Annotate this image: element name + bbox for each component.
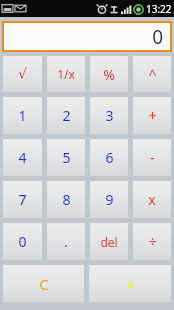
staticText: 1/x: [57, 66, 75, 82]
button[interactable]: 1/x: [46, 55, 86, 93]
staticText: 4: [18, 148, 27, 167]
button[interactable]: 5: [46, 138, 86, 177]
button[interactable]: del: [89, 222, 129, 261]
button[interactable]: 8: [46, 180, 86, 219]
staticText: x: [148, 190, 156, 209]
button[interactable]: .: [46, 222, 86, 261]
staticText: -: [150, 148, 155, 167]
button[interactable]: 7: [2, 180, 43, 219]
staticText: √: [18, 66, 27, 82]
button[interactable]: 0: [2, 21, 172, 52]
button[interactable]: x: [132, 180, 172, 219]
button[interactable]: -: [132, 138, 172, 177]
button[interactable]: 4: [2, 138, 43, 177]
button[interactable]: =: [88, 264, 172, 303]
staticText: 1: [18, 106, 27, 125]
staticText: 5: [62, 148, 71, 167]
staticText: 9: [105, 190, 114, 209]
staticText: 0: [152, 24, 163, 50]
staticText: 13:22: [146, 2, 172, 16]
button[interactable]: C: [2, 264, 85, 303]
staticText: +: [148, 106, 157, 125]
button[interactable]: ÷: [132, 222, 172, 261]
staticText: C: [39, 274, 49, 294]
button[interactable]: √: [2, 55, 43, 93]
staticText: 2: [62, 106, 71, 125]
button[interactable]: 2: [46, 96, 86, 135]
staticText: =: [126, 274, 135, 294]
button[interactable]: 0: [2, 222, 43, 261]
button[interactable]: ^: [132, 55, 172, 93]
staticText: ^: [148, 65, 157, 84]
staticText: 0: [18, 232, 27, 251]
button[interactable]: 6: [89, 138, 129, 177]
button[interactable]: +: [132, 96, 172, 135]
button[interactable]: 3: [89, 96, 129, 135]
staticText: 6: [105, 148, 114, 167]
staticText: %: [103, 65, 115, 84]
staticText: ÷: [148, 232, 157, 251]
staticText: del: [100, 234, 118, 250]
button[interactable]: 1: [2, 96, 43, 135]
staticText: 8: [62, 190, 71, 209]
staticText: .: [64, 232, 68, 251]
button[interactable]: %: [89, 55, 129, 93]
staticText: 7: [18, 190, 27, 209]
staticText: 3: [105, 106, 114, 125]
button[interactable]: 9: [89, 180, 129, 219]
